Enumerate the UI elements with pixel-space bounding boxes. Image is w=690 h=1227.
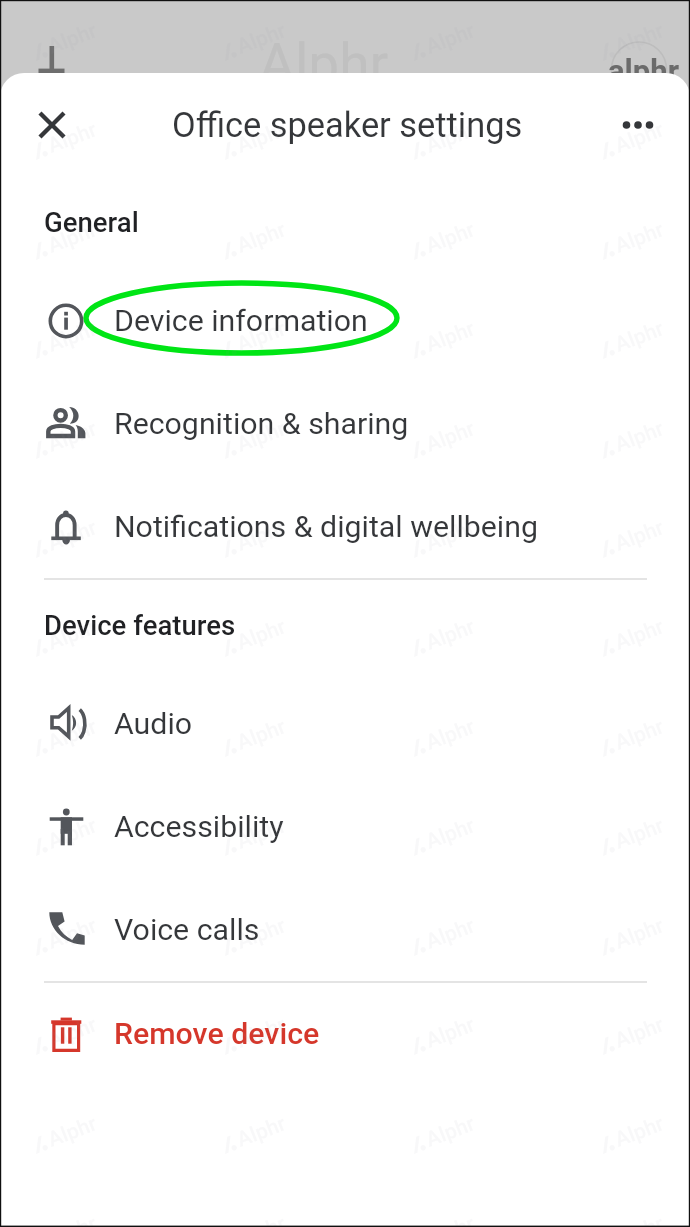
staticText: Remove device bbox=[114, 1016, 320, 1052]
button[interactable]: More options bbox=[614, 101, 662, 149]
staticText: Alphr bbox=[422, 1211, 479, 1227]
staticText: Office speaker settings bbox=[172, 105, 523, 145]
button[interactable]: Close bbox=[28, 101, 76, 149]
staticText: Alphr bbox=[422, 117, 479, 159]
staticText: Alphr bbox=[233, 913, 290, 955]
staticText: Alphr bbox=[44, 117, 101, 159]
staticText: Audio bbox=[114, 706, 193, 742]
staticText: Alphr bbox=[44, 416, 101, 458]
staticText: Alphr bbox=[44, 18, 101, 60]
staticText: Alphr bbox=[233, 1012, 290, 1054]
staticText: General bbox=[44, 206, 139, 238]
button[interactable]: Remove device bbox=[0, 982, 690, 1085]
button[interactable]: Device information bbox=[0, 269, 690, 372]
staticText: Alphr bbox=[233, 1211, 290, 1227]
staticText: Device information bbox=[114, 303, 368, 339]
button[interactable]: Audio bbox=[0, 672, 690, 775]
staticText: Alphr bbox=[44, 614, 101, 656]
staticText: Alphr bbox=[44, 217, 101, 259]
staticText: Alphr bbox=[44, 813, 101, 855]
staticText: Alphr bbox=[44, 714, 101, 756]
button[interactable]: Recognition & sharing bbox=[0, 372, 690, 475]
staticText: Alphr bbox=[611, 117, 668, 159]
staticText: Voice calls bbox=[114, 912, 260, 948]
staticText: Alphr bbox=[611, 1211, 668, 1227]
staticText: Alphr bbox=[44, 515, 101, 557]
staticText: Alphr bbox=[233, 813, 290, 855]
staticText: Alphr bbox=[44, 1012, 101, 1054]
staticText: Recognition & sharing bbox=[114, 406, 409, 442]
staticText: Alphr bbox=[233, 515, 290, 557]
staticText: Alphr bbox=[422, 515, 479, 557]
staticText: Device features bbox=[44, 609, 236, 641]
staticText: Alphr bbox=[44, 913, 101, 955]
staticText: Alphr bbox=[611, 18, 668, 60]
staticText: Alphr bbox=[233, 416, 290, 458]
button[interactable]: Notifications & digital wellbeing bbox=[0, 475, 690, 578]
button[interactable]: Voice calls bbox=[0, 878, 690, 981]
staticText: Alphr bbox=[44, 316, 101, 358]
button[interactable]: Accessibility bbox=[0, 775, 690, 878]
staticText: Alphr bbox=[233, 316, 290, 358]
staticText: Alphr bbox=[259, 32, 389, 96]
staticText: alphr bbox=[608, 53, 679, 89]
staticText: Notifications & digital wellbeing bbox=[114, 509, 538, 545]
staticText: Accessibility bbox=[114, 809, 284, 845]
staticText: Alphr bbox=[233, 117, 290, 159]
staticText: Alphr bbox=[44, 1211, 101, 1227]
